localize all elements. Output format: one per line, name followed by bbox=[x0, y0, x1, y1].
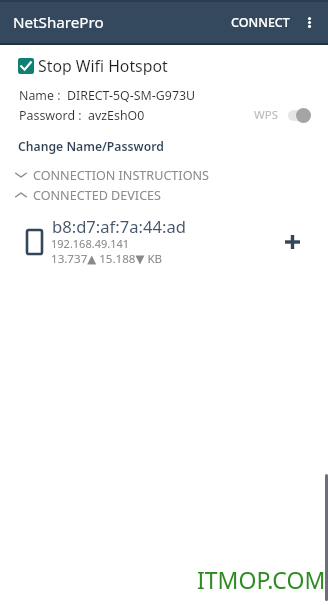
staticText: ITMOP.COM bbox=[197, 564, 326, 595]
staticText: CONNECTION INSTRUCTIONS bbox=[33, 167, 209, 184]
button[interactable]: b8:d7:af:7a:44:ad bbox=[0, 215, 328, 271]
button[interactable]: Add device bbox=[276, 226, 308, 258]
staticText: Password : avzEshO0 bbox=[19, 107, 145, 124]
button[interactable]: CONNECTED DEVICES bbox=[0, 186, 328, 204]
staticText: Change Name/Password bbox=[18, 138, 164, 155]
staticText: CONNECTED DEVICES bbox=[33, 187, 162, 204]
button[interactable]: Stop Wifi Hotspot bbox=[0, 56, 328, 76]
button[interactable]: Change Name/Password bbox=[10, 134, 172, 159]
staticText: CONNECT bbox=[231, 14, 290, 31]
button[interactable]: WPS bbox=[250, 104, 316, 126]
button[interactable]: CONNECTION INSTRUCTIONS bbox=[0, 166, 328, 184]
button[interactable]: More options bbox=[293, 0, 326, 44]
staticText: Stop Wifi Hotspot bbox=[38, 55, 168, 75]
staticText: 192.168.49.141 bbox=[51, 236, 130, 251]
staticText: Name : DIRECT-5Q-SM-G973U bbox=[19, 87, 196, 104]
button[interactable]: CONNECT bbox=[222, 0, 298, 44]
staticText: b8:d7:af:7a:44:ad bbox=[52, 215, 186, 238]
staticText: WPS bbox=[254, 107, 278, 123]
staticText: NetSharePro bbox=[13, 12, 104, 33]
staticText: 13.737▲ 15.188▼ KB bbox=[51, 251, 163, 267]
